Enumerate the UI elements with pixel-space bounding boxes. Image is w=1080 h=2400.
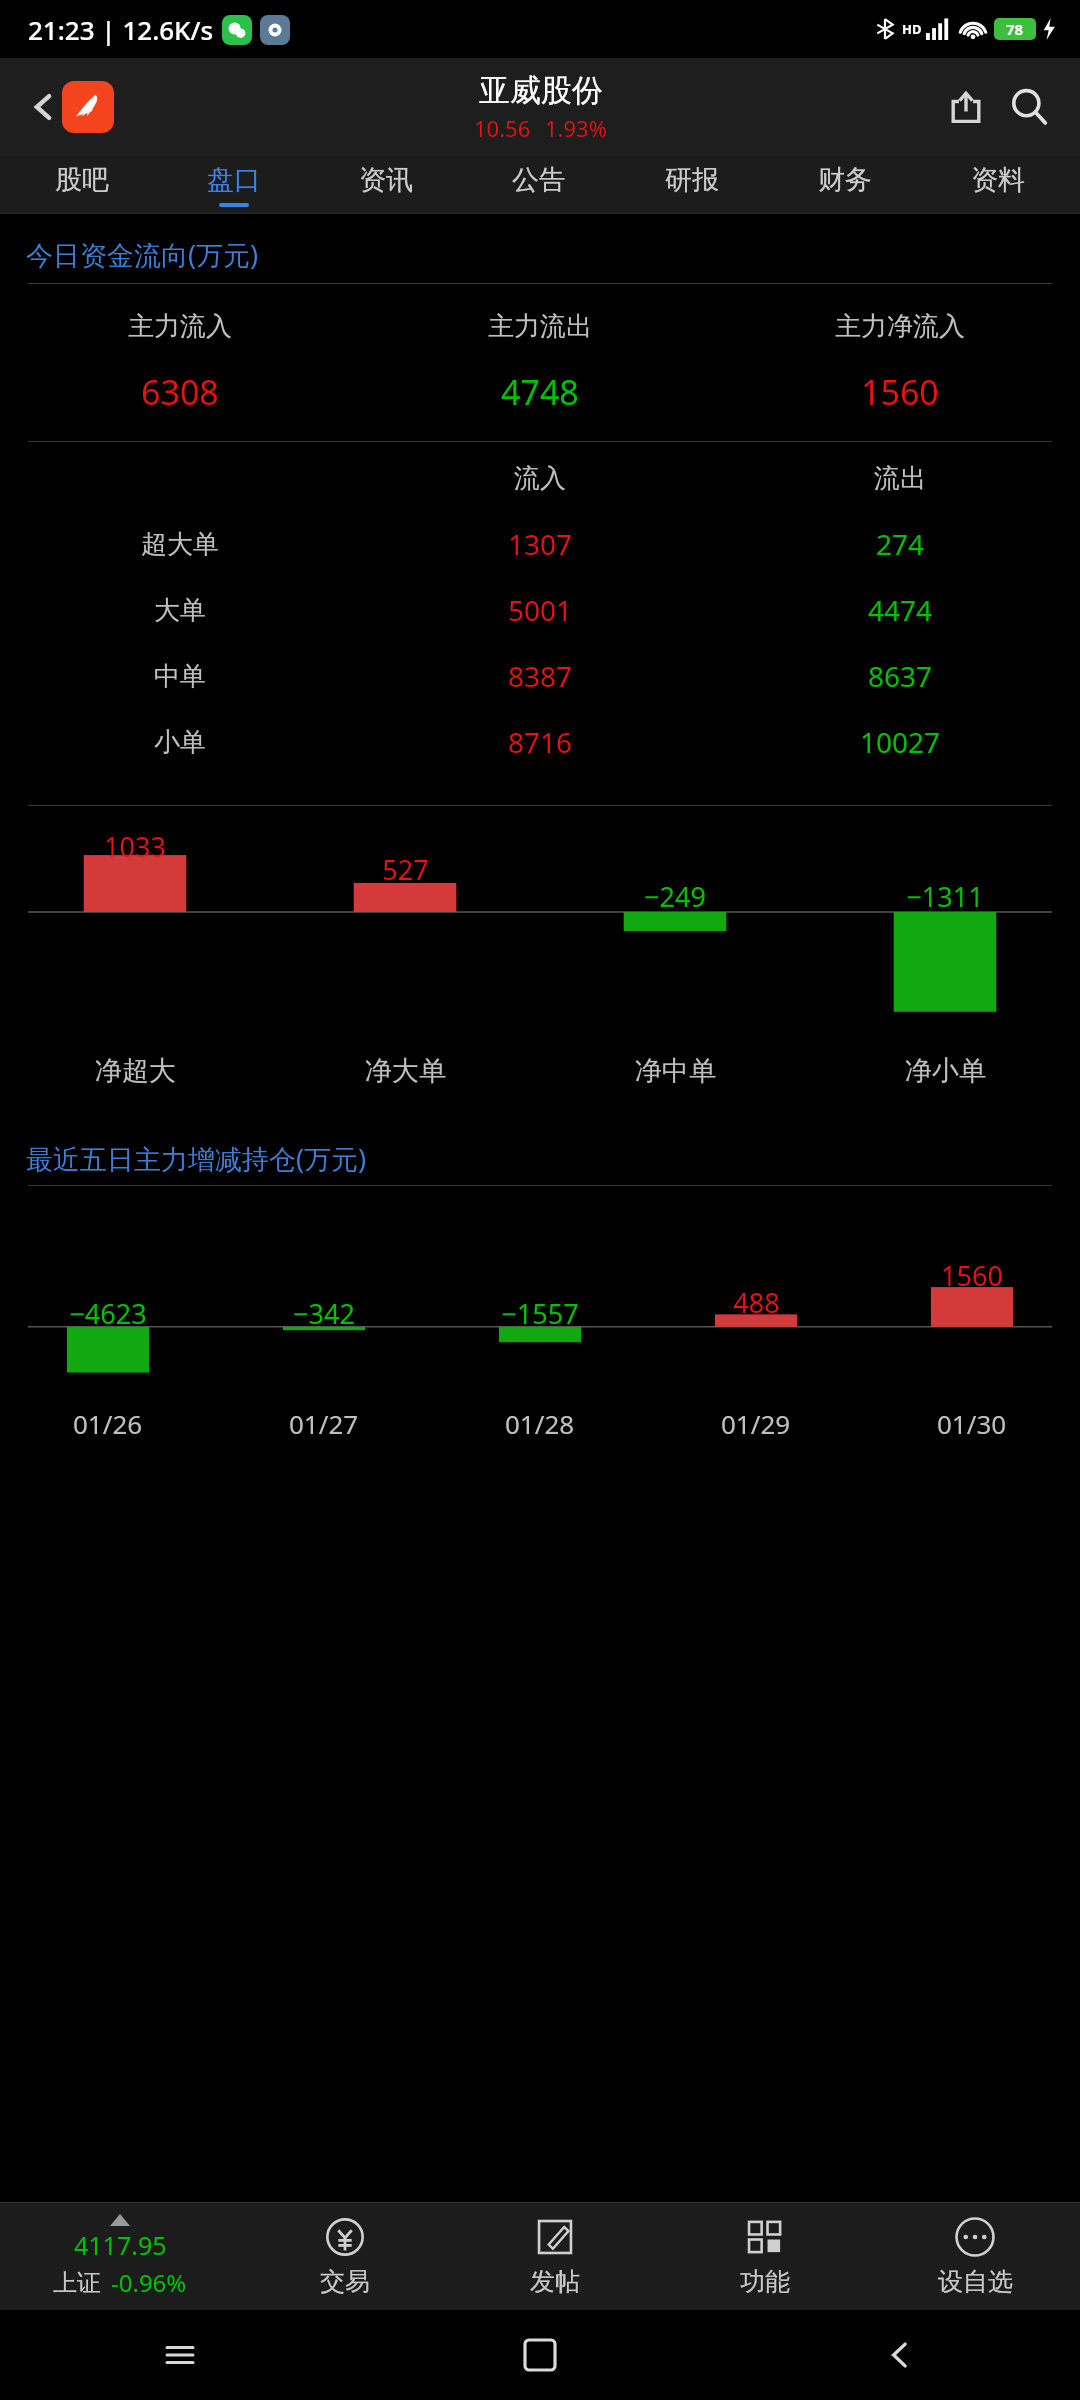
staticText: 488 [733, 1284, 780, 1321]
staticText: 78 [1006, 19, 1024, 39]
staticText: 1033 [104, 828, 166, 865]
staticText: 流入 [514, 462, 566, 495]
staticText: 527 [382, 851, 429, 888]
staticText: 1307 [508, 525, 573, 563]
staticText: 1560 [861, 369, 939, 415]
button[interactable]: 交易 [240, 2202, 450, 2310]
staticText: 21:23 | 12.6K/s [28, 12, 214, 47]
staticText: 4117.95 [74, 2228, 167, 2262]
staticText: 超大单 [141, 528, 219, 561]
staticText: 01/26 [73, 1406, 143, 1441]
staticText: 8637 [868, 657, 933, 695]
button[interactable]: 财务 [768, 156, 921, 214]
staticText: 今日资金流向(万元) [26, 236, 259, 273]
staticText: −1311 [906, 878, 984, 915]
button[interactable]: 资料 [921, 156, 1074, 214]
staticText: 资料 [971, 163, 1025, 197]
staticText: 6308 [141, 369, 219, 415]
staticText: 主力流出 [488, 310, 592, 343]
button[interactable]: 资讯 [310, 156, 462, 214]
staticText: 净中单 [635, 1054, 716, 1088]
staticText: 设自选 [938, 2266, 1013, 2297]
button[interactable]: 设自选 [870, 2202, 1080, 2310]
staticText: 主力流入 [128, 310, 232, 343]
button[interactable]: Home [360, 2310, 720, 2400]
staticText: −249 [644, 878, 706, 915]
staticText: 01/30 [937, 1406, 1007, 1441]
button[interactable]: Back [720, 2310, 1080, 2400]
staticText: 交易 [320, 2266, 370, 2297]
staticText: 净超大 [95, 1054, 176, 1088]
staticText: 股吧 [55, 163, 109, 197]
staticText: 主力净流入 [835, 310, 965, 343]
staticText: 小单 [154, 726, 206, 759]
staticText: 盘口 [207, 163, 261, 197]
staticText: 财务 [818, 163, 872, 197]
staticText: 01/27 [289, 1406, 359, 1441]
button[interactable]: 公告 [462, 156, 615, 214]
staticText: 中单 [154, 660, 206, 693]
button[interactable]: 发帖 [450, 2202, 660, 2310]
staticText: −4623 [69, 1295, 147, 1332]
staticText: 研报 [665, 163, 719, 197]
staticText: 公告 [512, 163, 566, 197]
staticText: 01/28 [505, 1406, 575, 1441]
staticText: 流出 [874, 462, 926, 495]
staticText: 上证 [53, 2268, 101, 2298]
staticText: 资讯 [359, 163, 413, 197]
button[interactable]: Share [940, 81, 992, 133]
staticText: 亚威股份 [479, 71, 603, 110]
staticText: 1560 [941, 1257, 1003, 1294]
staticText: −342 [293, 1295, 355, 1332]
staticText: 4474 [868, 591, 933, 629]
button[interactable]: 盘口 [158, 156, 310, 214]
staticText: 净大单 [365, 1054, 446, 1088]
staticText: 最近五日主力增减持仓(万元) [26, 1140, 367, 1177]
staticText: 4748 [501, 369, 579, 415]
staticText: 1.93% [545, 113, 607, 143]
staticText: 10027 [860, 723, 941, 761]
staticText: 8387 [508, 657, 573, 695]
staticText: 大单 [154, 594, 206, 627]
staticText: 10.56 [474, 113, 531, 143]
button[interactable]: App logo [62, 81, 114, 133]
staticText: -0.96% [111, 2266, 187, 2299]
staticText: 功能 [740, 2266, 790, 2297]
button[interactable]: Recents [0, 2310, 360, 2400]
staticText: 5001 [508, 591, 573, 629]
staticText: 274 [876, 525, 925, 563]
button[interactable]: 功能 [660, 2202, 870, 2310]
button[interactable]: Search [1000, 78, 1058, 136]
button[interactable]: 4117.95 [0, 2202, 240, 2310]
staticText: 发帖 [530, 2266, 580, 2297]
staticText: 净小单 [905, 1054, 986, 1088]
staticText: 01/29 [721, 1406, 791, 1441]
button[interactable]: Back [18, 82, 68, 132]
staticText: HD [902, 20, 922, 38]
staticText: 8716 [508, 723, 573, 761]
staticText: −1557 [501, 1295, 579, 1332]
button[interactable]: 股吧 [6, 156, 158, 214]
button[interactable]: 研报 [615, 156, 768, 214]
